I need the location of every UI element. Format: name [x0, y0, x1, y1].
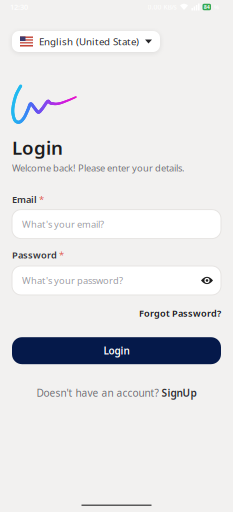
button[interactable]: Forgot Password?: [139, 307, 221, 319]
staticText: 12:30: [10, 2, 28, 12]
staticText: SignUp: [161, 386, 196, 400]
staticText: Password: [12, 249, 57, 261]
button[interactable]: What's your email?: [12, 210, 221, 239]
button[interactable]: SignUp: [161, 386, 196, 400]
staticText: Forgot Password?: [139, 307, 221, 319]
staticText: *: [59, 249, 64, 261]
staticText: Login: [103, 344, 129, 357]
staticText: Doesn't have an account?: [36, 386, 158, 400]
staticText: English (United State): [39, 35, 139, 48]
staticText: Login: [12, 135, 63, 160]
button[interactable]: Login: [12, 337, 221, 364]
button[interactable]: What's your password?: [12, 266, 221, 295]
button[interactable]: Show password: [201, 276, 213, 285]
button[interactable]: English (United State): [12, 31, 160, 52]
staticText: What's your email?: [22, 218, 104, 230]
staticText: Welcome back! Please enter your details.: [12, 162, 185, 174]
staticText: What's your password?: [22, 274, 123, 287]
staticText: 84: [204, 3, 210, 11]
staticText: *: [39, 193, 44, 206]
staticText: 0.00 KB/s: [147, 3, 176, 11]
staticText: Email: [12, 193, 37, 206]
